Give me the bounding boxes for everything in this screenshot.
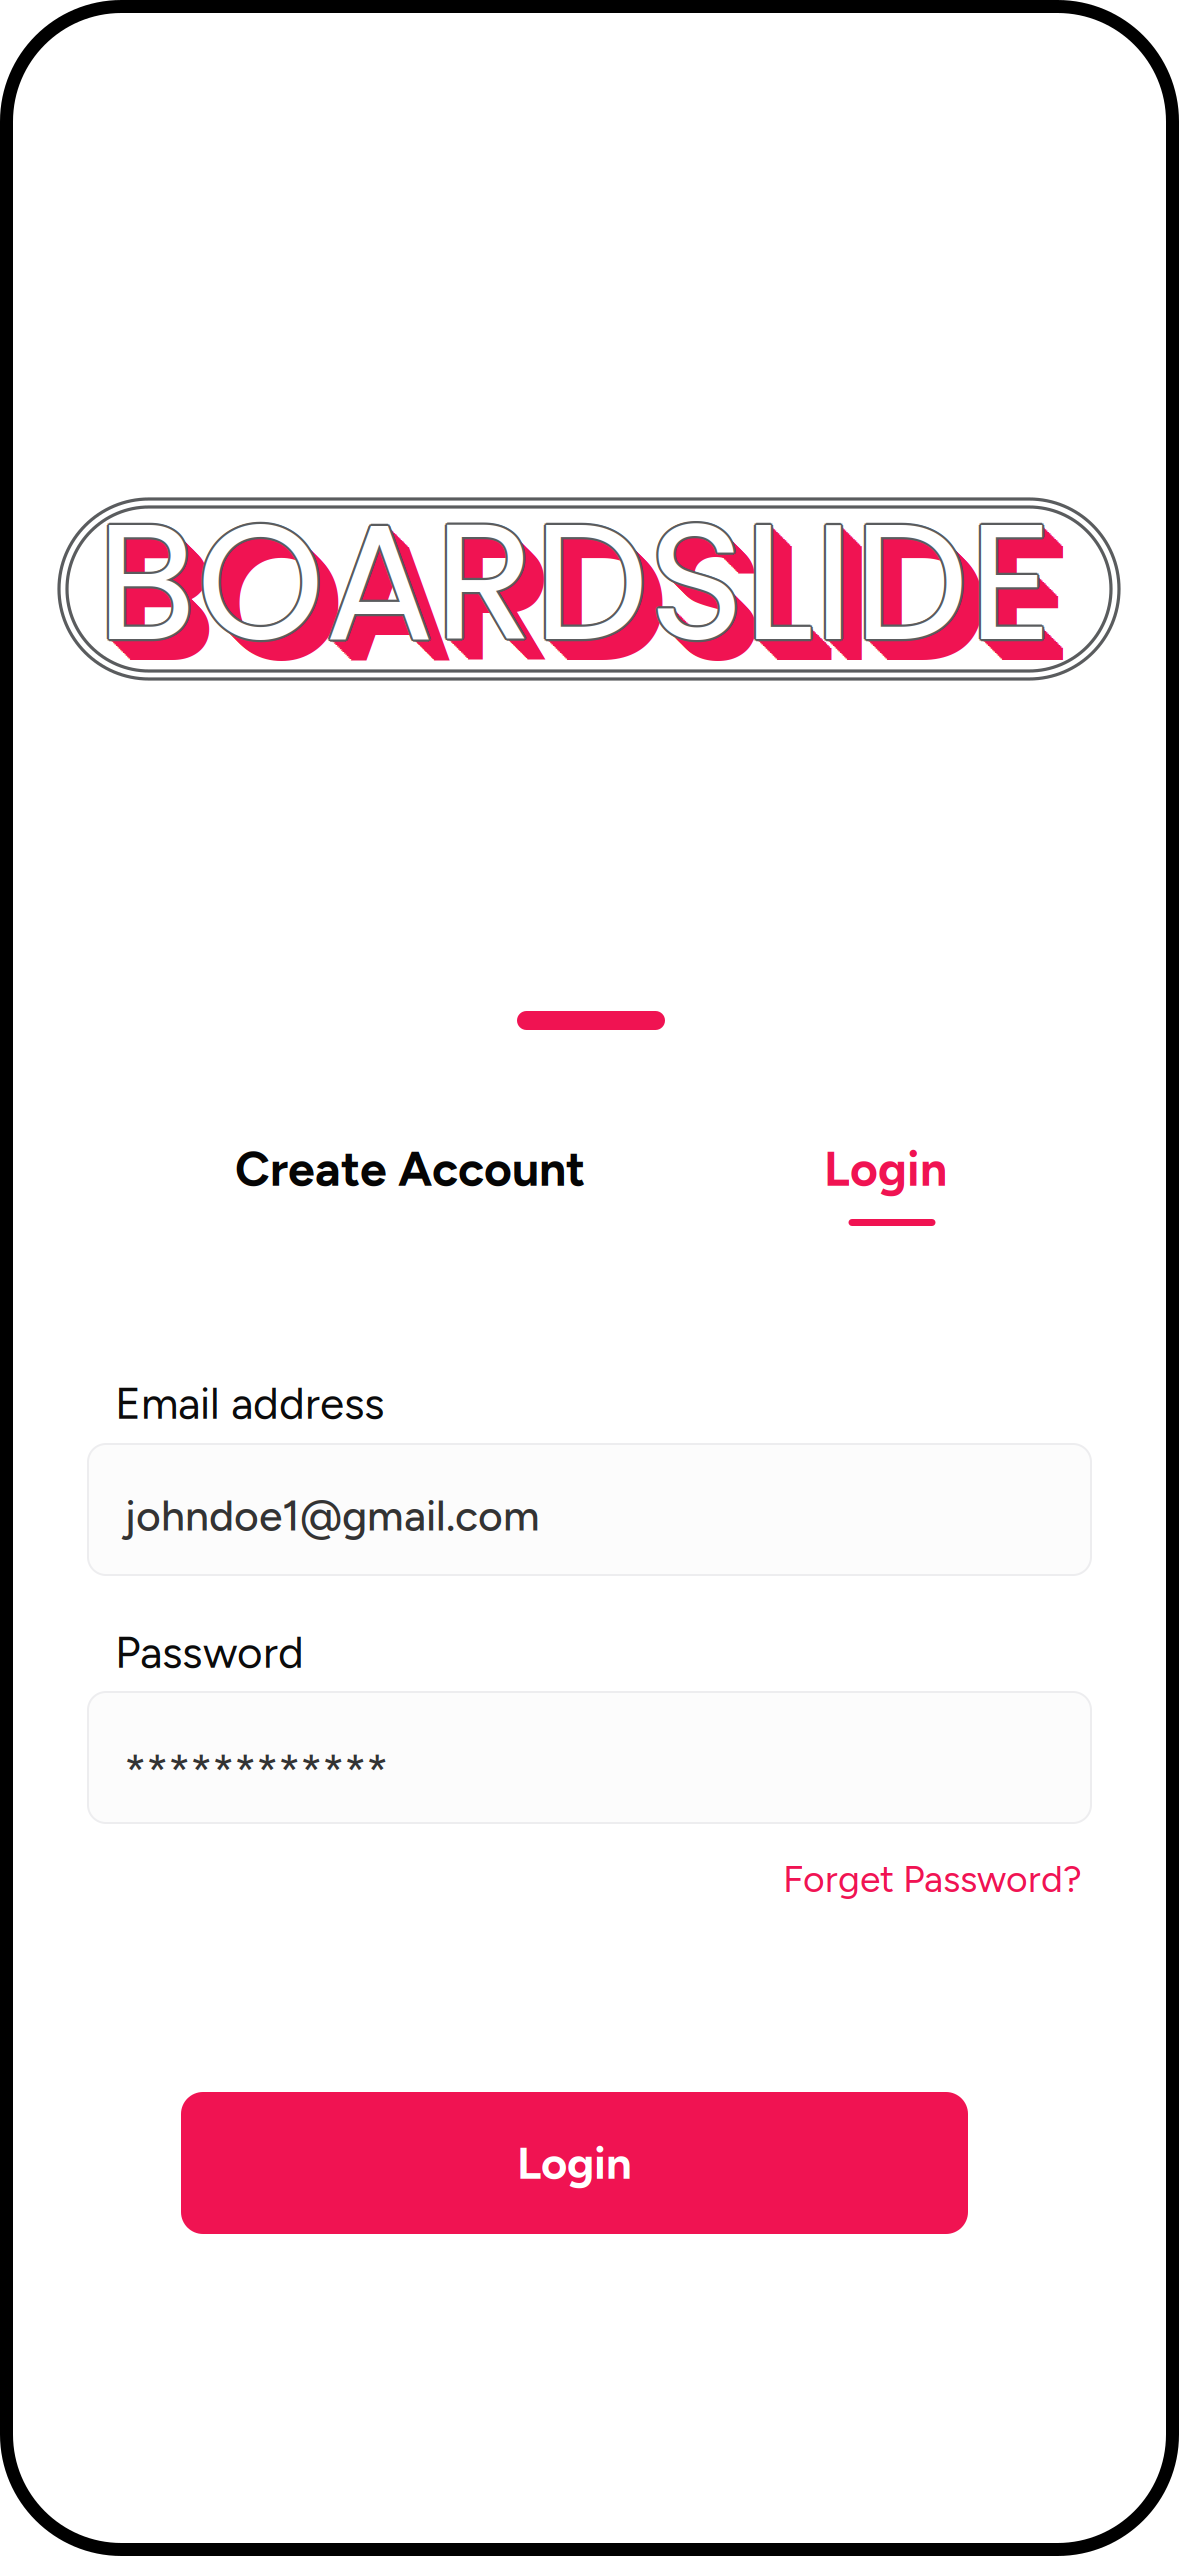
staticText: BOARDSLIDE (96, 468, 1051, 696)
staticText: BOARDSLIDE (115, 486, 1070, 714)
button[interactable]: Create Account (235, 1137, 587, 1201)
staticText: BOARDSLIDE (117, 489, 1072, 717)
staticText: BOARDSLIDE (96, 470, 1051, 698)
staticText: BOARDSLIDE (98, 469, 1053, 697)
staticText: BOARDSLIDE (102, 474, 1057, 701)
staticText: Forget Password? (783, 1857, 1082, 1901)
staticText: BOARDSLIDE (112, 483, 1067, 711)
button[interactable]: Login (181, 2092, 968, 2234)
staticText: BOARDSLIDE (95, 470, 1050, 697)
staticText: BOARDSLIDE (99, 471, 1054, 699)
staticText: BOARDSLIDE (113, 485, 1068, 713)
staticText: ************ (124, 1743, 388, 1799)
staticText: BOARDSLIDE (98, 470, 1053, 697)
staticText: BOARDSLIDE (101, 472, 1056, 700)
staticText: BOARDSLIDE (95, 467, 1050, 694)
staticText: BOARDSLIDE (96, 468, 1051, 696)
staticText: Email address (115, 1377, 385, 1430)
staticText: johndoe1@gmail.com (124, 1490, 540, 1541)
button[interactable]: Login (824, 1137, 952, 1226)
staticText: Login (517, 2136, 632, 2190)
staticText: BOARDSLIDE (106, 478, 1061, 706)
staticText: Create Account (235, 1140, 585, 1198)
staticText: BOARDSLIDE (109, 481, 1064, 708)
staticText: Password (115, 1626, 304, 1679)
staticText: BOARDSLIDE (116, 488, 1071, 715)
staticText: Login (824, 1140, 947, 1198)
staticText: BOARDSLIDE (110, 482, 1065, 710)
button[interactable]: Forget Password? (92, 1854, 1082, 1904)
staticText: BOARDSLIDE (94, 468, 1049, 696)
staticText: BOARDSLIDE (103, 475, 1058, 703)
staticText: BOARDSLIDE (99, 468, 1054, 696)
staticText: BOARDSLIDE (98, 467, 1053, 694)
staticText: BOARDSLIDE (96, 466, 1051, 694)
staticText: BOARDSLIDE (105, 476, 1060, 704)
staticText: BOARDSLIDE (108, 479, 1063, 707)
